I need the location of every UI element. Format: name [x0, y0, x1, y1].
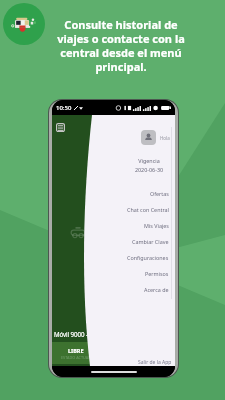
staticText: Chat con Central: [127, 206, 169, 213]
button[interactable]: Acerca de: [144, 279, 169, 295]
button[interactable]: LIBRE: [52, 342, 99, 364]
staticText: Consulte historial de viajes o contacte …: [53, 17, 189, 74]
staticText: Vigencia 2020-06-30: [119, 157, 175, 174]
staticText: LIBRE: [68, 347, 84, 354]
staticText: Mis Viajes: [144, 222, 169, 229]
button[interactable]: Configuraciones: [127, 247, 169, 263]
button[interactable]: Salir de la App: [130, 359, 172, 366]
button[interactable]: Hola: [141, 130, 170, 145]
staticText: Cambiar Clave: [132, 238, 169, 245]
button[interactable]: Open navigation menu: [56, 123, 65, 132]
staticText: Hola: [160, 135, 170, 141]
button[interactable]: Ofertas: [150, 183, 169, 199]
staticText: 10:50: [56, 104, 72, 112]
staticText: Permisos: [145, 270, 169, 277]
staticText: Acerca de: [144, 286, 169, 293]
button[interactable]: Chat con Central: [127, 199, 169, 215]
staticText: Configuraciones: [127, 254, 169, 261]
button[interactable]: Taxi app logo: [3, 3, 45, 45]
staticText: Móvil 9000 -: [54, 330, 88, 338]
button[interactable]: Cambiar Clave: [132, 231, 169, 247]
staticText: 75%: [163, 105, 172, 111]
staticText: ESTADO ACTUAL: [61, 355, 91, 360]
staticText: Salir de la App: [138, 359, 172, 366]
button[interactable]: Permisos: [145, 263, 169, 279]
staticText: Ofertas: [150, 190, 169, 197]
button[interactable]: Mis Viajes: [144, 215, 169, 231]
